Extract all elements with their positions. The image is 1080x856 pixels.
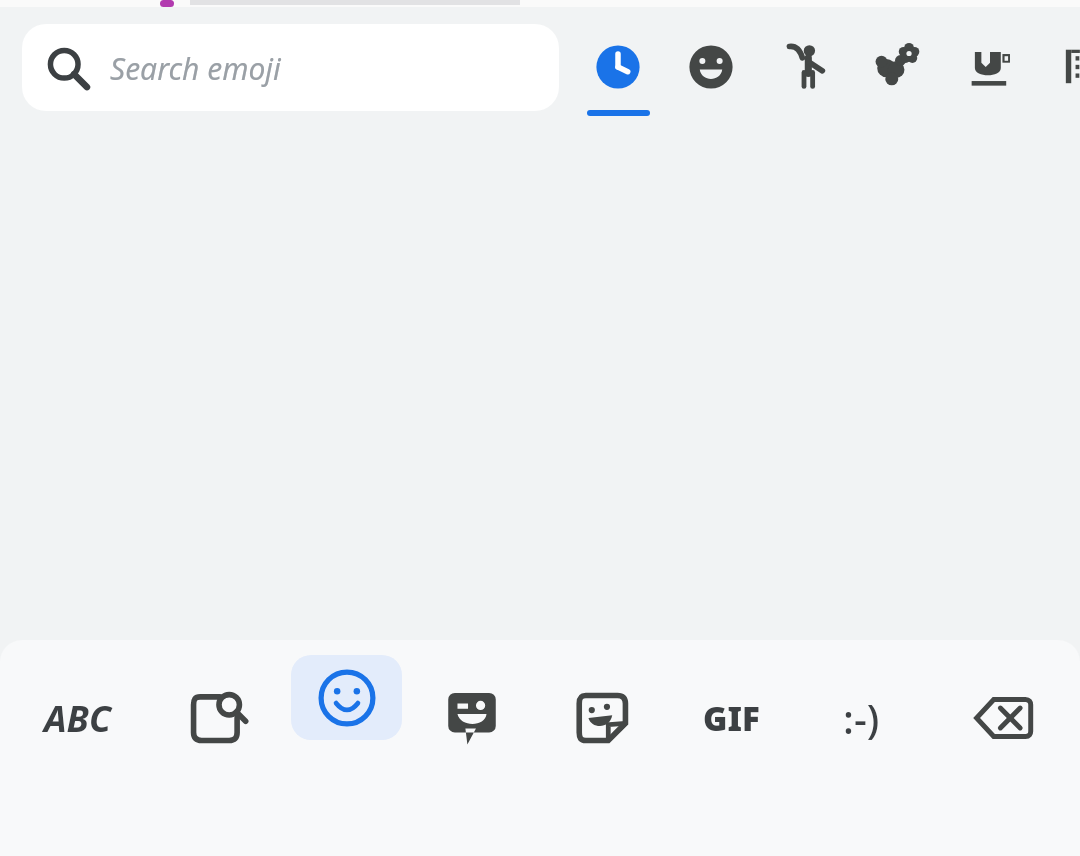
button[interactable]: ABC — [22, 658, 132, 778]
button[interactable]: Recents — [585, 34, 651, 100]
button[interactable]: Stickers — [548, 658, 658, 778]
button[interactable]: :-) — [806, 658, 916, 778]
button[interactable]: People — [771, 34, 837, 100]
button[interactable]: Search — [161, 658, 271, 778]
button[interactable]: Emoji — [291, 655, 402, 740]
button[interactable]: Emoji kitchen — [417, 658, 527, 778]
button[interactable]: Backspace — [948, 658, 1058, 778]
staticText: GIF — [703, 696, 760, 741]
button[interactable]: Smileys and emotion — [678, 34, 744, 100]
button[interactable]: GIF — [676, 658, 786, 778]
staticText: :-) — [843, 691, 880, 745]
button[interactable]: Search emoji — [22, 24, 559, 111]
button[interactable]: Food and drink — [957, 34, 1023, 100]
staticText: ABC — [44, 694, 111, 743]
button[interactable]: Travel and places — [1035, 34, 1080, 100]
button[interactable]: Animals and nature — [862, 34, 928, 100]
staticText: Search emoji — [110, 48, 281, 89]
